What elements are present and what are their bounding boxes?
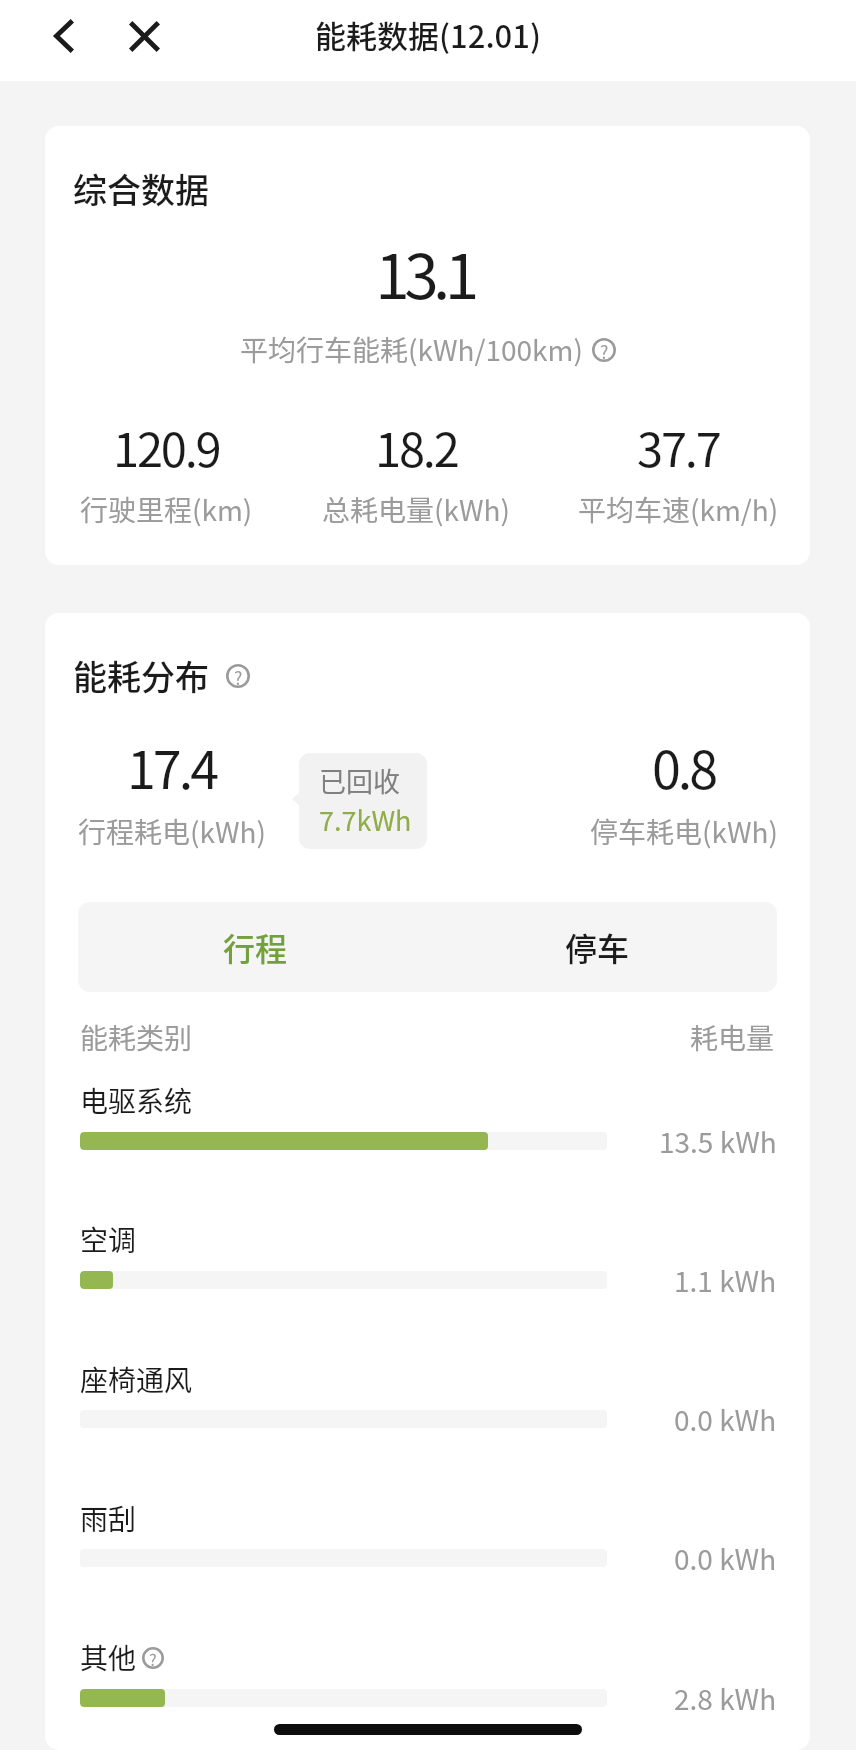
- staticText: 行程耗电(kWh): [78, 811, 266, 852]
- staticText: 能耗数据(12.01): [315, 12, 541, 57]
- button[interactable]: Back: [31, 0, 95, 72]
- staticText: 已回收: [319, 761, 400, 800]
- staticText: 18.2: [375, 412, 458, 480]
- staticText: 能耗分布: [73, 651, 209, 700]
- staticText: 停车耗电(kWh): [590, 811, 778, 852]
- staticText: 7.7kWh: [319, 800, 412, 839]
- staticText: 总耗电量(kWh): [322, 489, 510, 530]
- staticText: 17.4: [127, 729, 217, 804]
- staticText: 电驱系统: [80, 1080, 193, 1121]
- staticText: 0.0 kWh: [674, 1538, 777, 1579]
- button[interactable]: 停车: [427, 902, 777, 992]
- staticText: 行驶里程(km): [80, 489, 253, 530]
- button[interactable]: 行程: [78, 902, 427, 992]
- staticText: 停车: [565, 924, 630, 970]
- staticText: 行程: [223, 924, 288, 970]
- button[interactable]: About energy distribution: [226, 664, 250, 688]
- staticText: 耗电量: [690, 1017, 775, 1058]
- staticText: ?: [600, 338, 609, 362]
- staticText: 0.8: [652, 729, 716, 804]
- button[interactable]: About other energy consumption: [142, 1647, 164, 1669]
- staticText: ?: [234, 664, 243, 688]
- staticText: 1.1 kWh: [674, 1260, 777, 1301]
- staticText: 13.5 kWh: [659, 1121, 777, 1162]
- staticText: 综合数据: [73, 164, 209, 213]
- staticText: 平均行车能耗(kWh/100km): [240, 329, 583, 370]
- staticText: 平均车速(km/h): [578, 489, 779, 530]
- staticText: 雨刮: [80, 1498, 137, 1539]
- staticText: ?: [149, 1647, 157, 1669]
- staticText: 2.8 kWh: [674, 1678, 777, 1719]
- staticText: 120.9: [113, 412, 220, 480]
- staticText: 37.7: [637, 412, 720, 480]
- staticText: 0.0 kWh: [674, 1399, 777, 1440]
- staticText: 座椅通风: [80, 1359, 193, 1400]
- staticText: 能耗类别: [80, 1017, 193, 1058]
- staticText: 13.1: [45, 227, 807, 317]
- staticText: 空调: [80, 1219, 137, 1260]
- button[interactable]: About average driving energy consumption: [592, 338, 616, 362]
- button[interactable]: Close: [112, 0, 176, 72]
- staticText: 其他: [80, 1637, 137, 1678]
